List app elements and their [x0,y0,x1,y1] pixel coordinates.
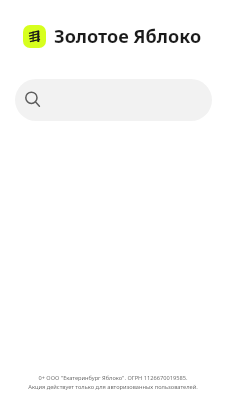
staticText: 0+ ООО "Екатеринбург Яблоко". ОГРН 11266… [38,374,188,382]
staticText: Золотое Яблоко [54,24,202,49]
button[interactable]: Золотое Яблоко [23,24,202,49]
staticText: Акция действует только для авторизованны… [28,383,198,391]
button[interactable]: Search [15,79,212,121]
